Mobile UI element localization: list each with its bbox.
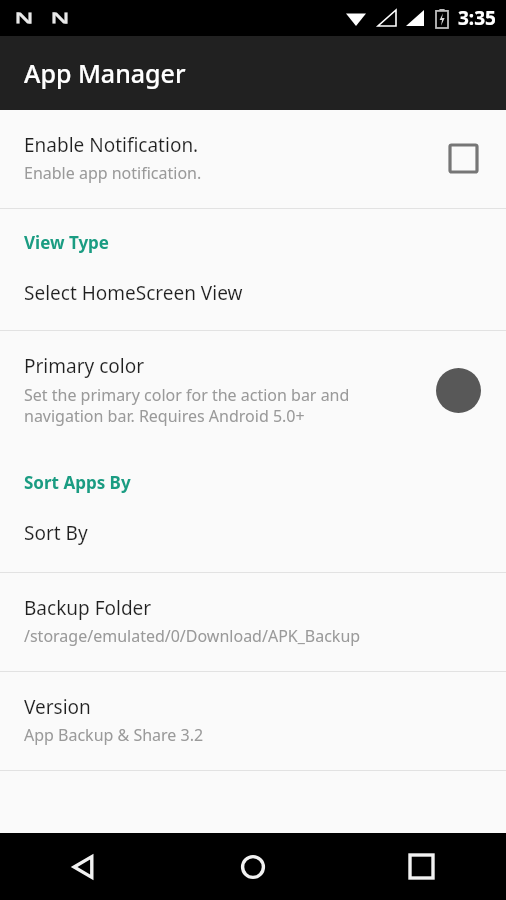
staticText: App Backup & Share 3.2 [24,724,204,746]
staticText: Sort By [24,520,88,546]
staticText: Set the primary color for the action bar… [24,384,422,427]
button[interactable]: Backup Folder [0,573,506,671]
staticText: Sort Apps By [24,471,482,494]
button[interactable]: Recent apps [337,833,506,900]
button[interactable]: Back [0,833,168,900]
staticText: /storage/emulated/0/Download/APK_Backup [24,625,361,647]
staticText: Select HomeScreen View [24,280,243,306]
staticText: Enable app notification. [24,162,202,184]
button[interactable]: Home [168,833,337,900]
button[interactable]: Version [0,672,506,770]
button[interactable]: Sort By [0,494,506,572]
staticText: Backup Folder [24,595,152,621]
button[interactable]: Choose primary color [434,366,482,414]
button[interactable]: Select HomeScreen View [0,254,506,330]
staticText: View Type [24,231,482,254]
staticText: Primary color [24,353,145,379]
button[interactable]: Enable Notification. [0,110,506,208]
staticText: App Manager [24,56,186,90]
staticText: Enable Notification. [24,132,199,158]
button[interactable]: Enable Notification checkbox [444,139,482,177]
staticText: 3:35 [458,5,496,31]
staticText: Version [24,694,91,720]
button[interactable]: Primary color [0,331,506,449]
